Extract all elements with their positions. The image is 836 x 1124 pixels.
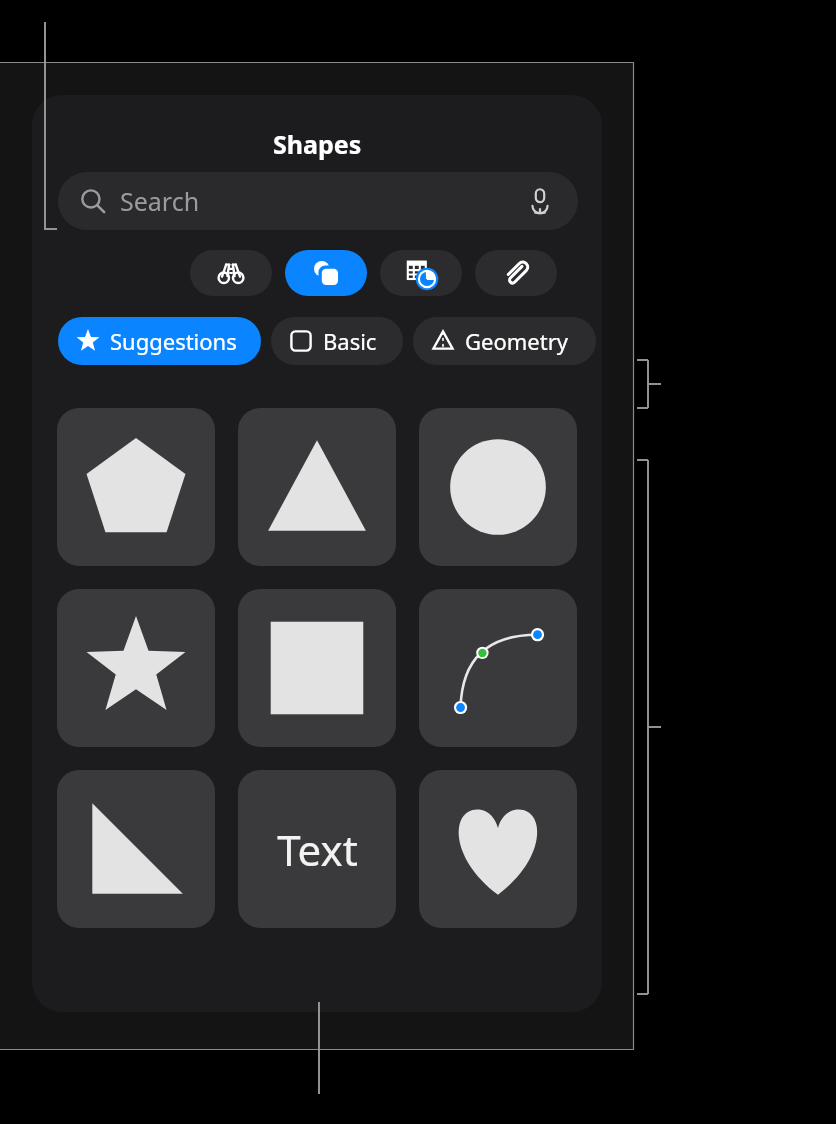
- button[interactable]: Heart: [419, 770, 577, 928]
- button[interactable]: Browse: [190, 250, 272, 296]
- button[interactable]: Text: [238, 770, 396, 928]
- button[interactable]: Suggestions: [58, 317, 261, 365]
- button[interactable]: Geometry: [413, 317, 596, 365]
- button[interactable]: Dictate: [526, 187, 554, 215]
- button[interactable]: Circle: [419, 408, 577, 566]
- staticText: Basic: [323, 326, 377, 356]
- button[interactable]: Right triangle: [57, 770, 215, 928]
- staticText: Suggestions: [110, 326, 237, 356]
- button[interactable]: Star: [57, 589, 215, 747]
- staticText: Geometry: [465, 326, 568, 356]
- button[interactable]: Attach: [475, 250, 557, 296]
- button[interactable]: Basic: [271, 317, 403, 365]
- button[interactable]: Square: [238, 589, 396, 747]
- staticText: Shapes: [273, 127, 362, 161]
- button[interactable]: Search: [58, 172, 578, 230]
- button[interactable]: Curve: [419, 589, 577, 747]
- button[interactable]: Triangle: [238, 408, 396, 566]
- button[interactable]: Shapes: [285, 250, 367, 296]
- button[interactable]: Pentagon: [57, 408, 215, 566]
- staticText: Search: [120, 184, 200, 218]
- staticText: Text: [277, 821, 358, 878]
- button[interactable]: Tables and charts: [380, 250, 462, 296]
